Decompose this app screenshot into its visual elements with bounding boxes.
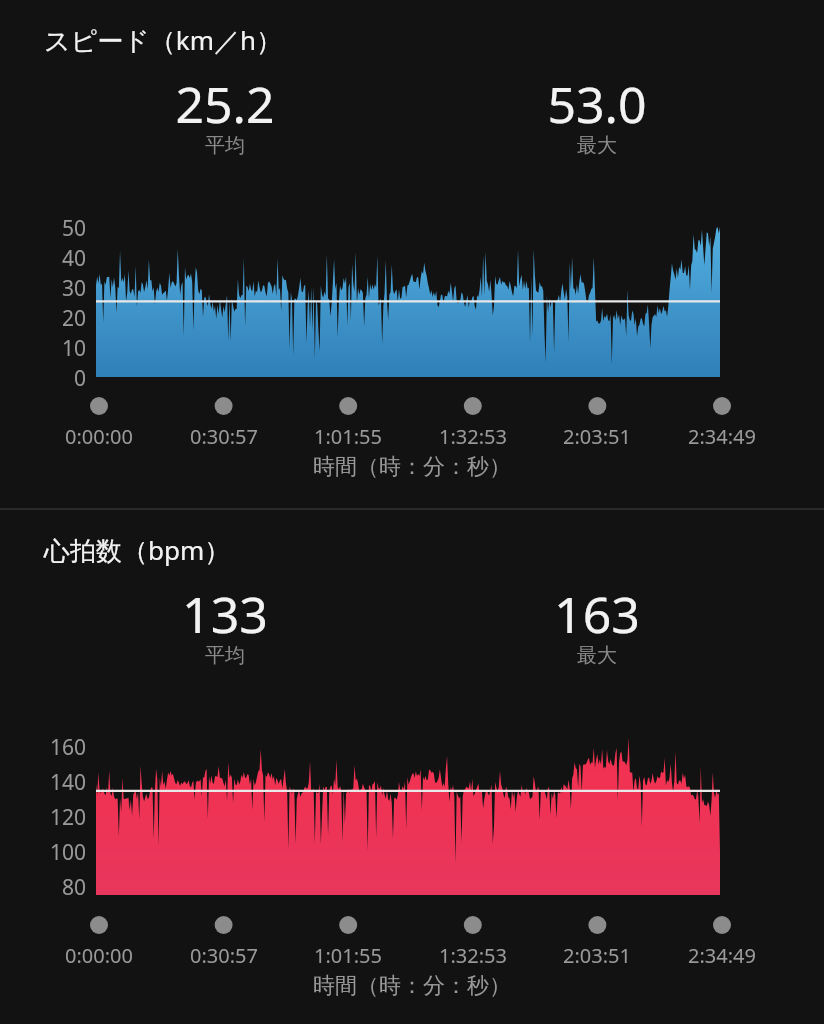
staticText: 1:32:53 [411,942,535,969]
staticText: 時間（時：分：秒） [200,972,624,1000]
staticText: 1:01:55 [286,423,410,450]
staticText: 0:30:57 [162,942,286,969]
staticText: 80 [34,873,86,899]
staticText: 140 [34,768,86,794]
button[interactable]: スピード（km／h） [0,0,824,508]
staticText: 40 [34,244,86,270]
staticText: 2:34:49 [660,423,784,450]
staticText: 53.0 [502,70,692,132]
staticText: 2:34:49 [660,942,784,969]
button[interactable]: 心拍数（bpm） [0,510,824,1024]
staticText: 0:00:00 [37,423,161,450]
staticText: 最大 [502,643,692,668]
staticText: 160 [34,733,86,759]
staticText: 心拍数（bpm） [44,532,231,568]
staticText: 1:32:53 [411,423,535,450]
staticText: 133 [130,580,320,642]
staticText: スピード（km／h） [44,22,283,58]
staticText: 1:01:55 [286,942,410,969]
staticText: 10 [34,334,86,360]
staticText: 120 [34,803,86,829]
staticText: 平均 [130,133,320,158]
staticText: 平均 [130,643,320,668]
staticText: 0:30:57 [162,423,286,450]
staticText: 20 [34,304,86,330]
staticText: 時間（時：分：秒） [200,453,624,481]
staticText: 30 [34,274,86,300]
staticText: 最大 [502,133,692,158]
staticText: 0 [34,364,86,390]
staticText: 50 [34,214,86,240]
staticText: 100 [34,838,86,864]
staticText: 2:03:51 [535,423,659,450]
staticText: 25.2 [130,70,320,132]
staticText: 2:03:51 [535,942,659,969]
staticText: 0:00:00 [37,942,161,969]
staticText: 163 [502,580,692,642]
